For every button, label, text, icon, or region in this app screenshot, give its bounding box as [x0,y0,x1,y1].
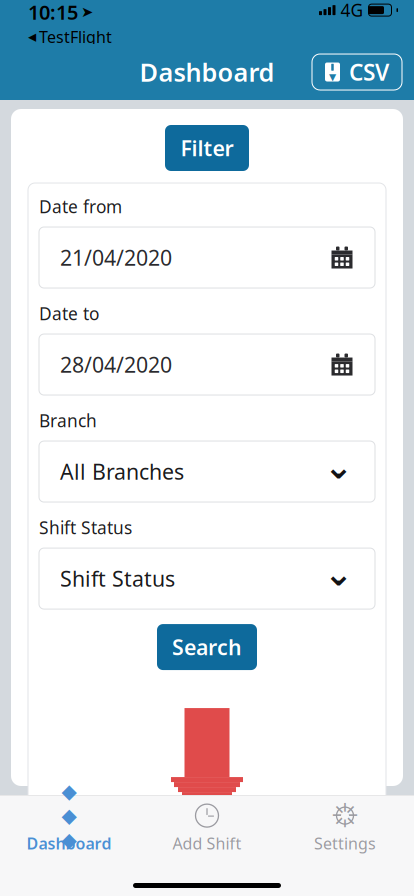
staticText: Date from [39,195,122,218]
staticText: ✳ [331,797,359,834]
staticText: 4G [340,0,363,22]
staticText: TestFlight [39,26,112,47]
staticText: 10:15 [28,0,78,25]
button[interactable]: ▼ [312,54,402,90]
staticText: Dashboard [139,55,274,89]
staticText: CSV [349,57,389,87]
staticText: Filter [180,134,233,162]
staticText: 21/04/2020 [60,243,172,272]
staticText: ⌄ [324,554,353,593]
staticText: All Branches [60,457,184,486]
button[interactable]: Shift Status [39,548,375,609]
staticText: Branch [39,409,97,432]
staticText: ◆ [61,804,76,827]
staticText: ◀ [28,31,36,43]
staticText: ◆ [61,780,76,803]
button[interactable]: ◆ [0,796,138,860]
staticText: ⌄ [324,447,353,486]
staticText: Settings [314,833,376,854]
staticText: ◆ [61,828,76,851]
staticText: ▼ [329,72,336,82]
staticText: Shift Status [60,564,175,593]
staticText: Add Shift [172,833,241,854]
staticText: Dashboard [26,833,111,854]
staticText: Date to [39,302,99,325]
button[interactable]: ✳ [276,796,414,860]
staticText: Search [172,633,242,661]
button[interactable]: 21/04/2020 [39,227,375,288]
button[interactable]: Add Shift [138,796,276,860]
button[interactable]: All Branches [39,441,375,502]
staticText: Shift Status [39,516,132,539]
staticText: ➤ [81,4,93,20]
staticText: 28/04/2020 [60,350,172,379]
button[interactable]: 28/04/2020 [39,334,375,395]
button[interactable]: Filter [165,125,249,171]
button[interactable]: Search [157,624,257,670]
